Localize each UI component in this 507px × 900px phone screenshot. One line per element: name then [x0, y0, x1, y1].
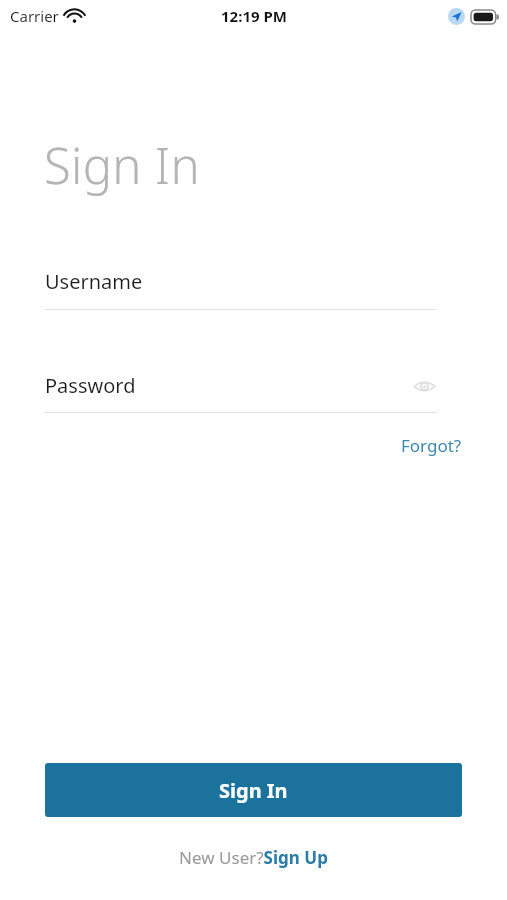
- staticText: Carrier: [10, 6, 59, 26]
- button[interactable]: New User?Sign Up: [179, 846, 328, 869]
- button[interactable]: Sign In: [45, 763, 462, 817]
- staticText: Sign In: [44, 132, 200, 199]
- staticText: 12:19 PM: [221, 6, 287, 26]
- button[interactable]: Password: [45, 372, 437, 399]
- staticText: Password: [45, 372, 136, 399]
- staticText: Sign In: [219, 777, 288, 804]
- button[interactable]: Forgot?: [401, 434, 462, 457]
- staticText: Forgot?: [401, 434, 462, 457]
- staticText: Username: [45, 268, 143, 295]
- staticText: New User?Sign Up: [179, 846, 328, 869]
- button[interactable]: Show password: [411, 373, 437, 399]
- button[interactable]: Username: [45, 268, 437, 310]
